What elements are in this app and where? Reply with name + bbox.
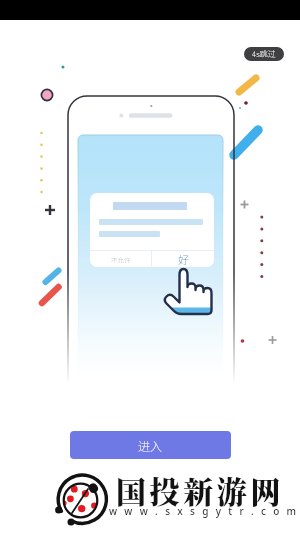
staticText: 进入 xyxy=(138,437,163,454)
staticText: 不允许 xyxy=(111,255,131,264)
staticText: 4s跳过 xyxy=(252,48,276,60)
button[interactable]: 进入 xyxy=(70,431,231,459)
staticText: 国投新游网 xyxy=(116,468,284,511)
button[interactable]: 好 xyxy=(153,251,214,267)
button[interactable]: 不允许 xyxy=(90,251,151,267)
button[interactable]: 4s跳过 xyxy=(244,47,284,61)
staticText: w w w . s x s g y t r . c o m xyxy=(109,504,299,518)
staticText: 好 xyxy=(178,251,189,267)
